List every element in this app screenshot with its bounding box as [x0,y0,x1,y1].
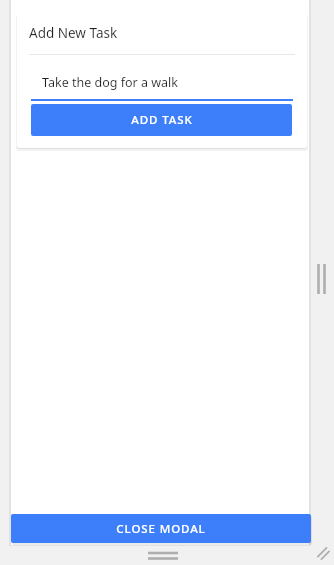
button[interactable]: Resize [315,545,331,561]
button[interactable]: Take the dog for a walk [31,73,293,101]
staticText: CLOSE MODAL [116,521,206,537]
button[interactable]: Resize width [314,262,328,296]
button[interactable]: ADD TASK [31,104,292,136]
staticText: ADD TASK [131,112,193,128]
button[interactable]: CLOSE MODAL [11,514,311,543]
button[interactable]: Resize height [147,549,179,561]
staticText: Add New Task [29,24,118,42]
staticText: Take the dog for a walk [42,74,178,91]
